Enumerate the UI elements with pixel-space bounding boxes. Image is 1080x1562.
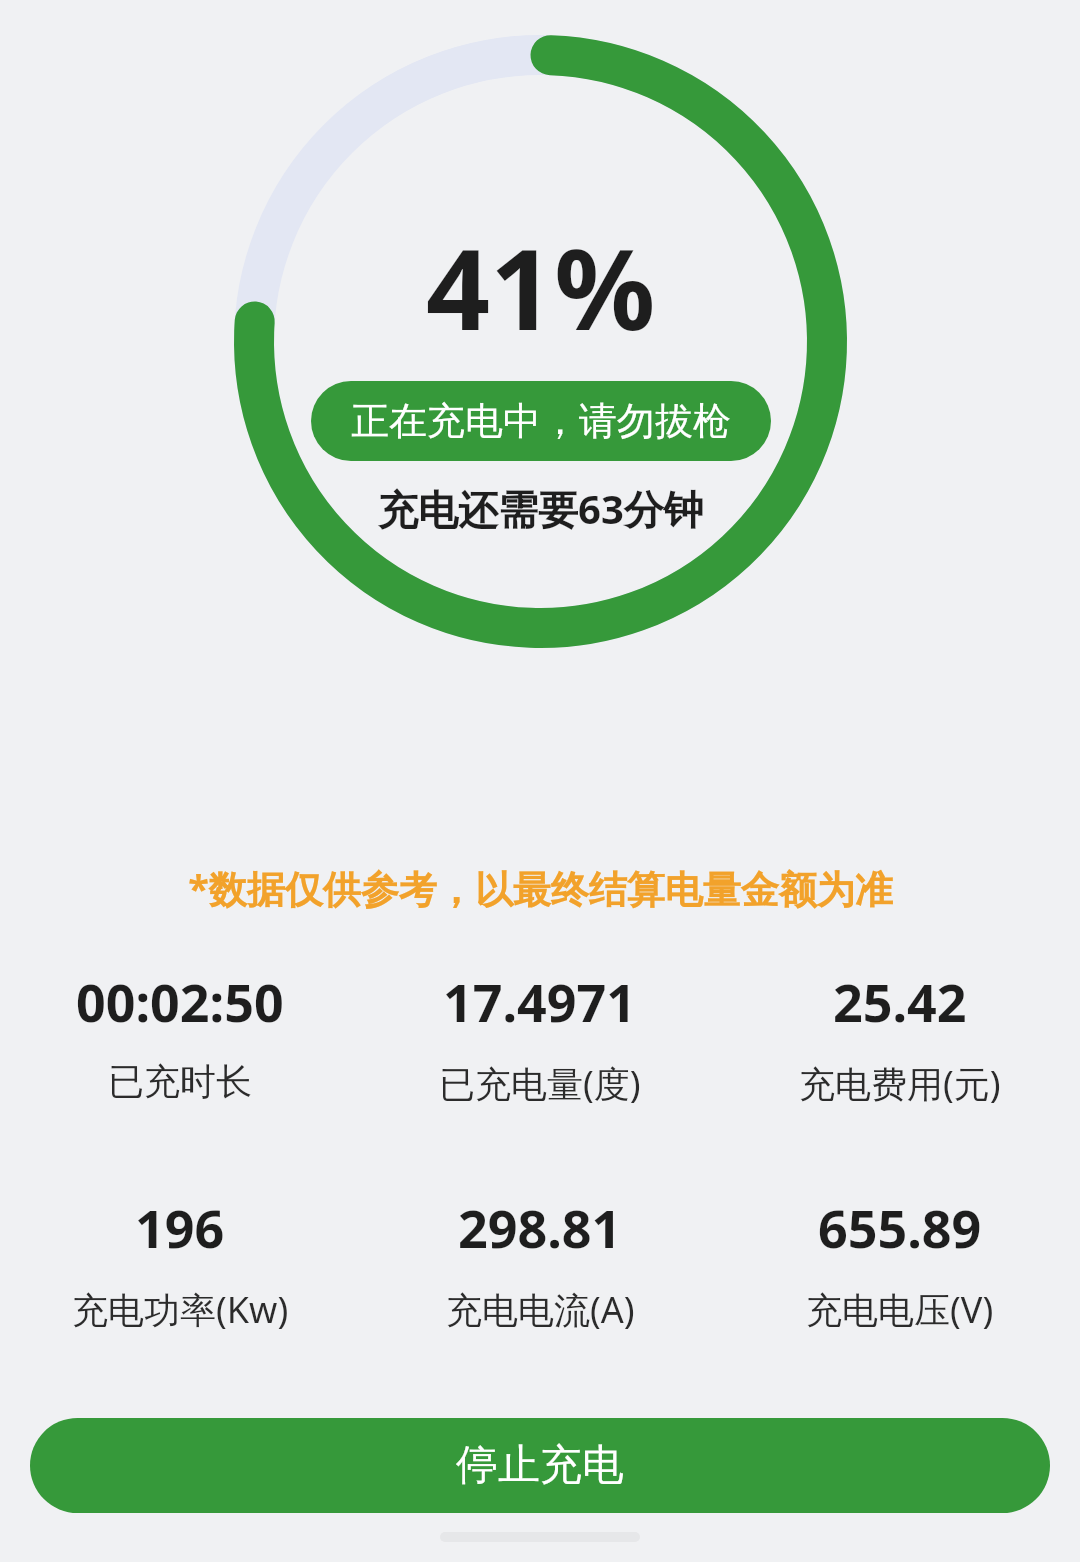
staticText: 正在充电中，请勿拔枪 [351, 397, 731, 445]
staticText: 充电费用(元) [799, 1059, 1001, 1108]
staticText: 已充时长 [108, 1059, 252, 1104]
staticText: 充电电压(V) [806, 1285, 994, 1334]
staticText: 充电电流(A) [446, 1285, 635, 1334]
staticText: 停止充电 [456, 1439, 624, 1492]
button[interactable]: 停止充电 [30, 1418, 1050, 1513]
staticText: 196 [135, 1192, 225, 1263]
staticText: 41% [426, 210, 656, 363]
staticText: *数据仅供参考，以最终结算电量金额为准 [188, 862, 893, 914]
staticText: 655.89 [818, 1192, 982, 1263]
staticText: 25.42 [833, 966, 967, 1037]
staticText: 已充电量(度) [439, 1059, 641, 1108]
staticText: 充电还需要63分钟 [378, 481, 704, 536]
staticText: 298.81 [458, 1192, 622, 1263]
staticText: 充电功率(Kw) [72, 1285, 289, 1334]
staticText: 00:02:50 [76, 966, 284, 1037]
button[interactable]: 正在充电中，请勿拔枪 [311, 381, 771, 461]
staticText: 17.4971 [443, 966, 637, 1037]
